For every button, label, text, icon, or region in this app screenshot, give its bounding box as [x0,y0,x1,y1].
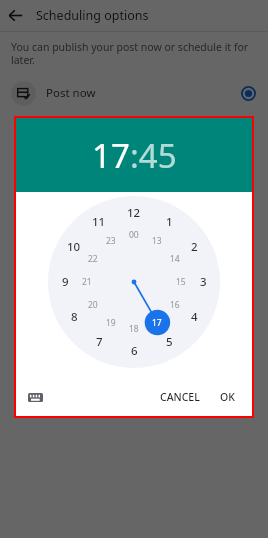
staticText: 1 [166,214,173,230]
staticText: 6 [131,343,138,359]
staticText: :45 [130,133,177,178]
staticText: 8 [71,309,78,325]
staticText: 17 [152,317,162,329]
staticText: 12 [127,205,141,221]
staticText: 9 [62,274,69,290]
button[interactable]: CANCEL [153,385,207,409]
staticText: 20 [88,299,98,311]
staticText: 13 [152,235,162,247]
button[interactable]: OK [213,385,242,409]
button[interactable]: Switch to text input [24,386,46,408]
staticText: 21 [82,276,92,288]
staticText: 19 [106,317,116,329]
staticText: 7 [96,334,103,350]
button[interactable]: Back [0,0,31,31]
staticText: Post now [46,85,96,101]
staticText: 10 [67,239,81,255]
staticText: 23 [106,235,116,247]
staticText: 15 [176,276,186,288]
staticText: OK [220,390,235,404]
button[interactable]: Post now [0,76,268,110]
staticText: Scheduling options [36,7,149,24]
staticText: 00 [129,229,139,241]
staticText: You can publish your post now or schedul… [11,40,249,67]
staticText: 5 [166,334,173,350]
staticText: CANCEL [160,390,200,404]
staticText: 17 [92,133,130,178]
staticText: 16 [170,299,180,311]
staticText: 2 [191,239,198,255]
staticText: 3 [200,274,207,290]
staticText: 18 [129,323,139,335]
staticText: 22 [88,253,98,265]
staticText: 11 [92,214,106,230]
staticText: 4 [191,309,198,325]
staticText: 14 [170,253,180,265]
